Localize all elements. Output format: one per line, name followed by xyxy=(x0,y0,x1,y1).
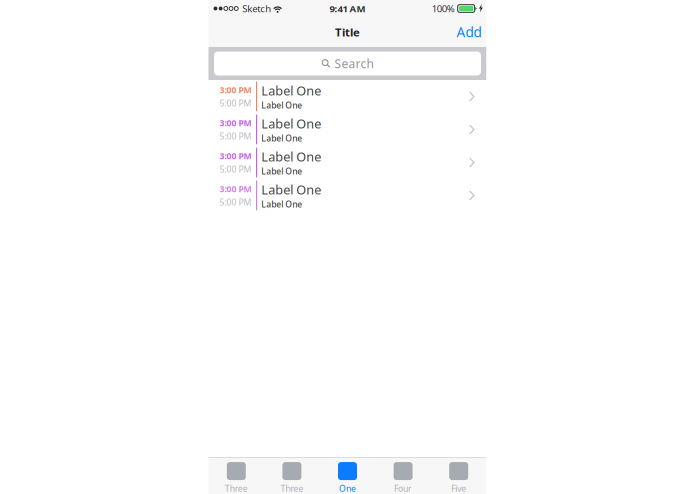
staticText: 3:00 PM xyxy=(219,150,251,162)
staticText: 3:00 PM xyxy=(219,84,251,96)
button[interactable]: Four xyxy=(375,458,431,494)
staticText: 3:00 PM xyxy=(219,183,251,195)
staticText: Label One xyxy=(261,132,302,144)
button[interactable]: Add xyxy=(449,18,486,46)
staticText: 5:00 PM xyxy=(219,163,251,175)
staticText: Label One xyxy=(261,165,302,177)
staticText: Three xyxy=(280,483,303,494)
button[interactable]: One xyxy=(320,458,375,494)
button[interactable]: Search xyxy=(208,47,486,80)
staticText: Label One xyxy=(261,99,302,111)
staticText: 5:00 PM xyxy=(219,196,251,208)
staticText: 9:41 AM xyxy=(329,2,365,15)
button[interactable]: 3:00 PM xyxy=(208,146,486,179)
button[interactable]: Three xyxy=(264,458,320,494)
staticText: Add xyxy=(456,23,481,41)
button[interactable]: Five xyxy=(431,458,486,494)
staticText: Label One xyxy=(261,198,302,210)
button[interactable]: Three xyxy=(208,458,264,494)
staticText: 5:00 PM xyxy=(219,130,251,142)
button[interactable]: 3:00 PM xyxy=(208,179,486,212)
button[interactable]: 3:00 PM xyxy=(208,80,486,113)
staticText: Title xyxy=(335,24,360,40)
staticText: Label One xyxy=(261,115,321,132)
staticText: Search xyxy=(334,55,373,72)
staticText: 100% xyxy=(432,2,455,15)
staticText: Label One xyxy=(261,148,321,165)
staticText: Sketch xyxy=(242,2,271,15)
staticText: Label One xyxy=(261,181,321,198)
staticText: 3:00 PM xyxy=(219,117,251,129)
staticText: Three xyxy=(225,483,248,494)
button[interactable]: 3:00 PM xyxy=(208,113,486,146)
staticText: One xyxy=(339,483,356,494)
staticText: Four xyxy=(394,483,412,494)
staticText: Five xyxy=(451,483,466,494)
staticText: 5:00 PM xyxy=(219,97,251,109)
staticText: Label One xyxy=(261,82,321,99)
